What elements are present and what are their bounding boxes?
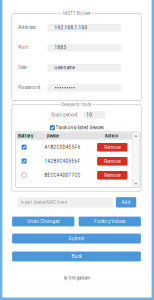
staticText: 192.168.1.100 <box>54 25 87 30</box>
staticText: Remove <box>104 159 120 164</box>
staticText: Undo Changes <box>27 219 59 224</box>
staticText: Devices to track <box>61 102 91 107</box>
staticText: Track only listed devices <box>56 125 104 130</box>
staticText: 1883 <box>54 45 66 50</box>
staticText: Address: <box>18 25 36 30</box>
staticText: Factory Values <box>94 219 125 224</box>
button[interactable]: Back <box>12 251 141 261</box>
staticText: Battery <box>18 133 33 139</box>
button[interactable]: Undo Changes <box>12 217 74 226</box>
staticText: Action <box>105 133 119 139</box>
staticText: Submit <box>68 236 84 241</box>
button[interactable]: Submit <box>12 234 141 243</box>
button[interactable]: Remove <box>97 171 127 180</box>
staticText: 1A2B3C4D5E6F <box>44 158 80 164</box>
button[interactable]: Add <box>116 197 136 207</box>
staticText: Back <box>71 254 81 259</box>
staticText: Scan period: <box>51 112 78 118</box>
staticText: User: <box>18 65 28 70</box>
staticText: Add <box>122 200 131 205</box>
staticText: BECC44DD77CC <box>44 172 80 178</box>
staticText: by Shogunxam <box>63 275 90 281</box>
staticText: 10 <box>86 112 92 118</box>
staticText: Device <box>46 133 58 139</box>
staticText: username <box>54 65 74 70</box>
staticText: Remove <box>104 145 120 150</box>
button[interactable]: Remove <box>97 143 127 152</box>
staticText: Remove <box>104 173 120 178</box>
staticText: Insert device MAC here <box>21 200 67 205</box>
staticText: Port: <box>18 45 29 50</box>
staticText: MQTT Broker <box>63 11 91 16</box>
staticText: Password: <box>18 85 41 90</box>
button[interactable]: Remove <box>97 157 127 166</box>
button[interactable]: Factory Values <box>79 217 141 226</box>
staticText: A1B2C3D4E5F6 <box>44 144 80 150</box>
